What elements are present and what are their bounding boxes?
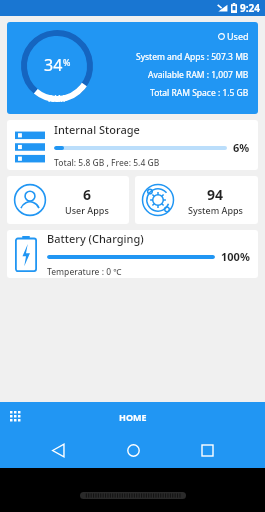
staticText: 6 [83,185,92,204]
button[interactable]: System Apps [135,176,258,224]
other: System Apps [141,183,175,217]
button[interactable]: 34 [7,22,258,114]
staticText: HOME [119,411,147,423]
button[interactable]: Apps grid [6,407,26,427]
staticText: User Apps [65,204,109,216]
button[interactable]: User Apps [7,176,129,224]
staticText: Available RAM : 1,007 MB [148,69,249,81]
staticText: Internal Storage [54,122,140,137]
staticText: % [63,56,71,68]
staticText: Used [227,30,249,42]
staticText: 94 [207,185,224,204]
staticText: System Apps [188,204,243,216]
button[interactable]: Storage [7,120,258,170]
staticText: 9:24 [240,1,260,15]
other: Battery [15,236,37,272]
staticText: 100% [221,249,250,264]
staticText: Total RAM Space : 1.5 GB [150,87,249,99]
staticText: Temperature : 0 ℃ [47,266,122,278]
staticText: System and Apps : 507.3 MB [136,51,249,63]
staticText: 34 [44,54,63,76]
button[interactable]: Back [41,433,75,467]
other: Storage [15,129,45,161]
staticText: Battery (Charging) [47,231,144,246]
button[interactable]: Recents [190,433,224,467]
other: User Apps [13,183,47,217]
button[interactable]: Apps grid [0,402,265,432]
staticText: RAM [48,93,66,104]
staticText: 6% [233,140,250,155]
button[interactable]: Battery [7,230,258,278]
staticText: Total: 5.8 GB , Free: 5.4 GB [54,157,160,169]
button[interactable]: Home [116,433,150,467]
